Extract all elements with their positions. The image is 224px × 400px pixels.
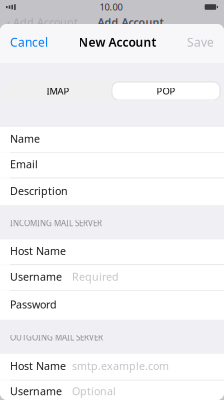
staticText: 10.00 — [100, 1, 123, 13]
button[interactable]: POP — [112, 82, 220, 100]
button[interactable]: Email — [0, 153, 224, 178]
staticText: Username — [10, 384, 62, 398]
staticText: OUTGOING MAIL SERVER — [10, 332, 103, 343]
staticText: Required — [72, 269, 119, 284]
staticText: smtp.example.com — [72, 359, 169, 373]
button[interactable]: Host Name — [0, 239, 224, 264]
button[interactable]: Username — [0, 265, 224, 290]
staticText: Save — [187, 34, 214, 50]
staticText: ‹ Add Account — [7, 15, 78, 29]
staticText: Name — [10, 131, 40, 146]
staticText: Host Name — [10, 359, 66, 373]
staticText: POP — [156, 85, 175, 97]
button[interactable]: Host Name — [0, 354, 224, 380]
button[interactable]: Name — [0, 127, 224, 152]
staticText: New Account — [78, 34, 156, 50]
staticText: Add Account — [97, 15, 163, 29]
staticText: Username — [10, 269, 62, 284]
button[interactable]: Password — [0, 291, 224, 320]
staticText: INCOMING MAIL SERVER — [10, 218, 102, 228]
staticText: Host Name — [10, 244, 66, 258]
staticText: Optional — [72, 384, 116, 398]
staticText: Password — [10, 297, 57, 311]
staticText: IMAP — [46, 85, 69, 97]
staticText: Description — [10, 184, 68, 198]
button[interactable]: IMAP — [4, 82, 112, 100]
button[interactable]: Username — [0, 380, 224, 400]
button[interactable]: Description — [0, 178, 224, 205]
button[interactable]: Save — [187, 24, 214, 60]
button[interactable]: Cancel — [10, 24, 48, 60]
staticText: Cancel — [10, 34, 48, 50]
staticText: Email — [10, 157, 38, 171]
